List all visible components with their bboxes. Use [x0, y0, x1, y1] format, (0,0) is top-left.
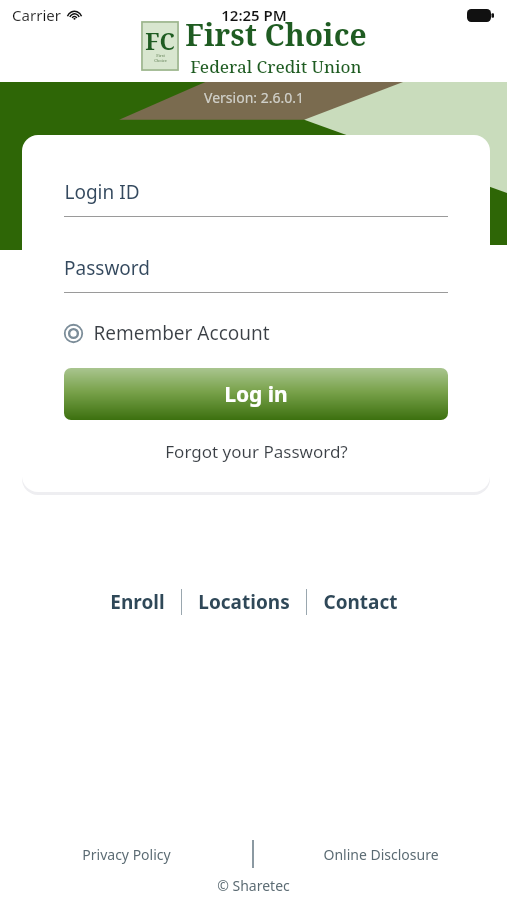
button[interactable]: Online Disclosure	[254, 845, 507, 864]
button[interactable]: Enroll	[102, 585, 173, 619]
staticText: Locations	[198, 589, 290, 615]
staticText: Version: 2.6.0.1	[204, 88, 304, 107]
button[interactable]: Privacy Policy	[0, 845, 252, 864]
staticText: Log in	[224, 380, 288, 409]
staticText: First Choice	[185, 14, 367, 55]
staticText: Remember Account	[93, 320, 270, 346]
staticText: Login ID	[64, 179, 140, 205]
button[interactable]: Forgot your Password?	[165, 440, 348, 463]
button[interactable]: Remember Account	[64, 320, 448, 346]
staticText: Privacy Policy	[82, 845, 171, 864]
button[interactable]: Log in	[64, 368, 448, 420]
button[interactable]: Contact	[315, 585, 406, 619]
button[interactable]: Password	[64, 255, 448, 293]
staticText: Carrier	[12, 5, 61, 25]
staticText: Forgot your Password?	[165, 440, 348, 463]
staticText: FC	[145, 25, 175, 56]
staticText: Online Disclosure	[323, 845, 439, 864]
button[interactable]: Login ID	[64, 179, 448, 217]
staticText: Federal Credit Union	[190, 55, 362, 78]
staticText: Choice	[154, 58, 167, 63]
staticText: 12:25 PM	[221, 5, 287, 25]
button[interactable]: Locations	[190, 585, 298, 619]
staticText: Contact	[323, 589, 398, 615]
staticText: Password	[64, 255, 150, 281]
staticText: First	[156, 53, 165, 58]
staticText: Enroll	[110, 589, 165, 615]
staticText: © Sharetec	[217, 876, 290, 895]
